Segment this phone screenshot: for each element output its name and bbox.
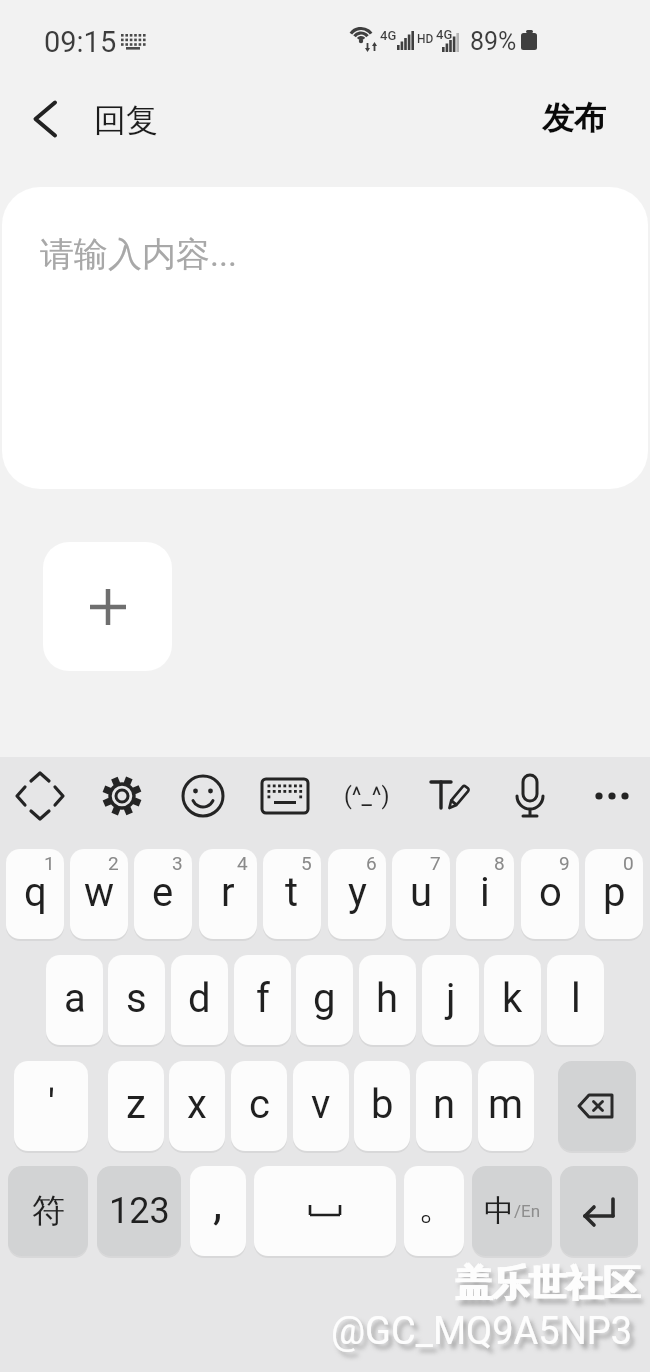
button[interactable]: , [190, 1166, 246, 1256]
staticText: h [376, 975, 399, 1022]
button[interactable] [173, 767, 233, 825]
staticText: r [221, 869, 235, 916]
staticText: u [410, 869, 433, 916]
staticText: 4G [380, 28, 397, 43]
staticText: 9 [559, 852, 570, 874]
button[interactable]: (^_^) [337, 767, 397, 825]
staticText: 3 [172, 852, 183, 874]
staticText: 4 [237, 852, 248, 874]
button[interactable]: a [46, 955, 103, 1045]
staticText: x [187, 1081, 207, 1128]
staticText: 1 [44, 852, 55, 874]
button[interactable] [17, 91, 73, 147]
staticText: c [249, 1081, 270, 1128]
button[interactable] [255, 767, 315, 825]
staticText: m [488, 1081, 524, 1128]
staticText: 盖乐世社区 [456, 1260, 641, 1307]
staticText: 8 [494, 852, 505, 874]
staticText: q [24, 869, 47, 916]
button[interactable]: d [171, 955, 228, 1045]
button[interactable] [254, 1166, 396, 1256]
staticText: j [446, 975, 456, 1022]
button[interactable]: 。 [404, 1166, 464, 1256]
staticText: d [188, 975, 211, 1022]
button[interactable] [582, 767, 642, 825]
staticText: /En [514, 1201, 541, 1221]
staticText: k [502, 975, 523, 1022]
staticText: w [84, 869, 115, 916]
staticText: ' [48, 1081, 55, 1128]
staticText: s [126, 975, 147, 1022]
button[interactable]: s [108, 955, 165, 1045]
staticText: @GC_MQ9A5NP3 [331, 1309, 633, 1354]
staticText: 。 [418, 1182, 456, 1230]
staticText: 09:15 [44, 25, 117, 59]
button[interactable]: x [169, 1061, 225, 1151]
button[interactable]: r [199, 849, 257, 939]
staticText: 5 [301, 852, 312, 874]
button[interactable]: l [547, 955, 604, 1045]
button[interactable]: g [296, 955, 353, 1045]
button[interactable]: u [392, 849, 450, 939]
button[interactable] [558, 1061, 636, 1151]
staticText: b [371, 1081, 394, 1128]
staticText: z [126, 1081, 146, 1128]
button[interactable]: v [293, 1061, 349, 1151]
staticText: 盖乐世社区 [454, 1260, 639, 1307]
button[interactable]: j [422, 955, 479, 1045]
staticText: y [348, 869, 367, 916]
button[interactable] [418, 767, 478, 825]
staticText: 回复 [94, 100, 158, 140]
button[interactable]: 123 [97, 1166, 181, 1256]
button[interactable]: 中 [472, 1166, 552, 1256]
button[interactable]: h [359, 955, 416, 1045]
staticText: 符 [32, 1190, 65, 1232]
staticText: n [433, 1081, 456, 1128]
staticText: g [313, 975, 336, 1022]
button[interactable]: p [585, 849, 643, 939]
button[interactable]: c [231, 1061, 287, 1151]
staticText: 0 [623, 852, 634, 874]
button[interactable]: y [328, 849, 386, 939]
button[interactable]: o [521, 849, 579, 939]
staticText: HD [417, 32, 434, 46]
button[interactable]: w [70, 849, 128, 939]
button[interactable]: n [416, 1061, 472, 1151]
button[interactable]: 符 [8, 1166, 88, 1256]
staticText: 2 [108, 852, 119, 874]
staticText: 89% [470, 27, 517, 56]
button[interactable]: i [456, 849, 514, 939]
staticText: (^_^) [344, 783, 390, 810]
staticText: , [213, 1176, 223, 1230]
button[interactable] [92, 767, 152, 825]
staticText: p [603, 869, 626, 916]
button[interactable]: t [263, 849, 321, 939]
button[interactable]: b [354, 1061, 410, 1151]
staticText: i [480, 869, 490, 916]
button[interactable] [10, 767, 70, 825]
button[interactable]: z [108, 1061, 164, 1151]
button[interactable]: f [234, 955, 291, 1045]
staticText: o [539, 869, 562, 916]
staticText: t [285, 869, 299, 916]
button[interactable]: 请输入内容... [2, 187, 648, 489]
staticText: e [152, 869, 174, 916]
button[interactable]: q [6, 849, 64, 939]
button[interactable] [500, 767, 560, 825]
button[interactable]: ' [14, 1061, 88, 1151]
staticText: 请输入内容... [40, 233, 237, 276]
staticText: a [64, 975, 86, 1022]
staticText: 中 [484, 1192, 514, 1230]
button[interactable] [43, 542, 172, 671]
button[interactable]: 发布 [518, 88, 630, 148]
staticText: v [311, 1081, 331, 1128]
staticText: f [256, 975, 270, 1022]
button[interactable]: k [484, 955, 541, 1045]
button[interactable] [560, 1166, 638, 1256]
button[interactable]: m [478, 1061, 534, 1151]
staticText: 发布 [542, 98, 606, 138]
staticText: l [571, 975, 581, 1022]
button[interactable]: e [134, 849, 192, 939]
staticText: 6 [366, 852, 377, 874]
staticText: 123 [109, 1190, 170, 1232]
